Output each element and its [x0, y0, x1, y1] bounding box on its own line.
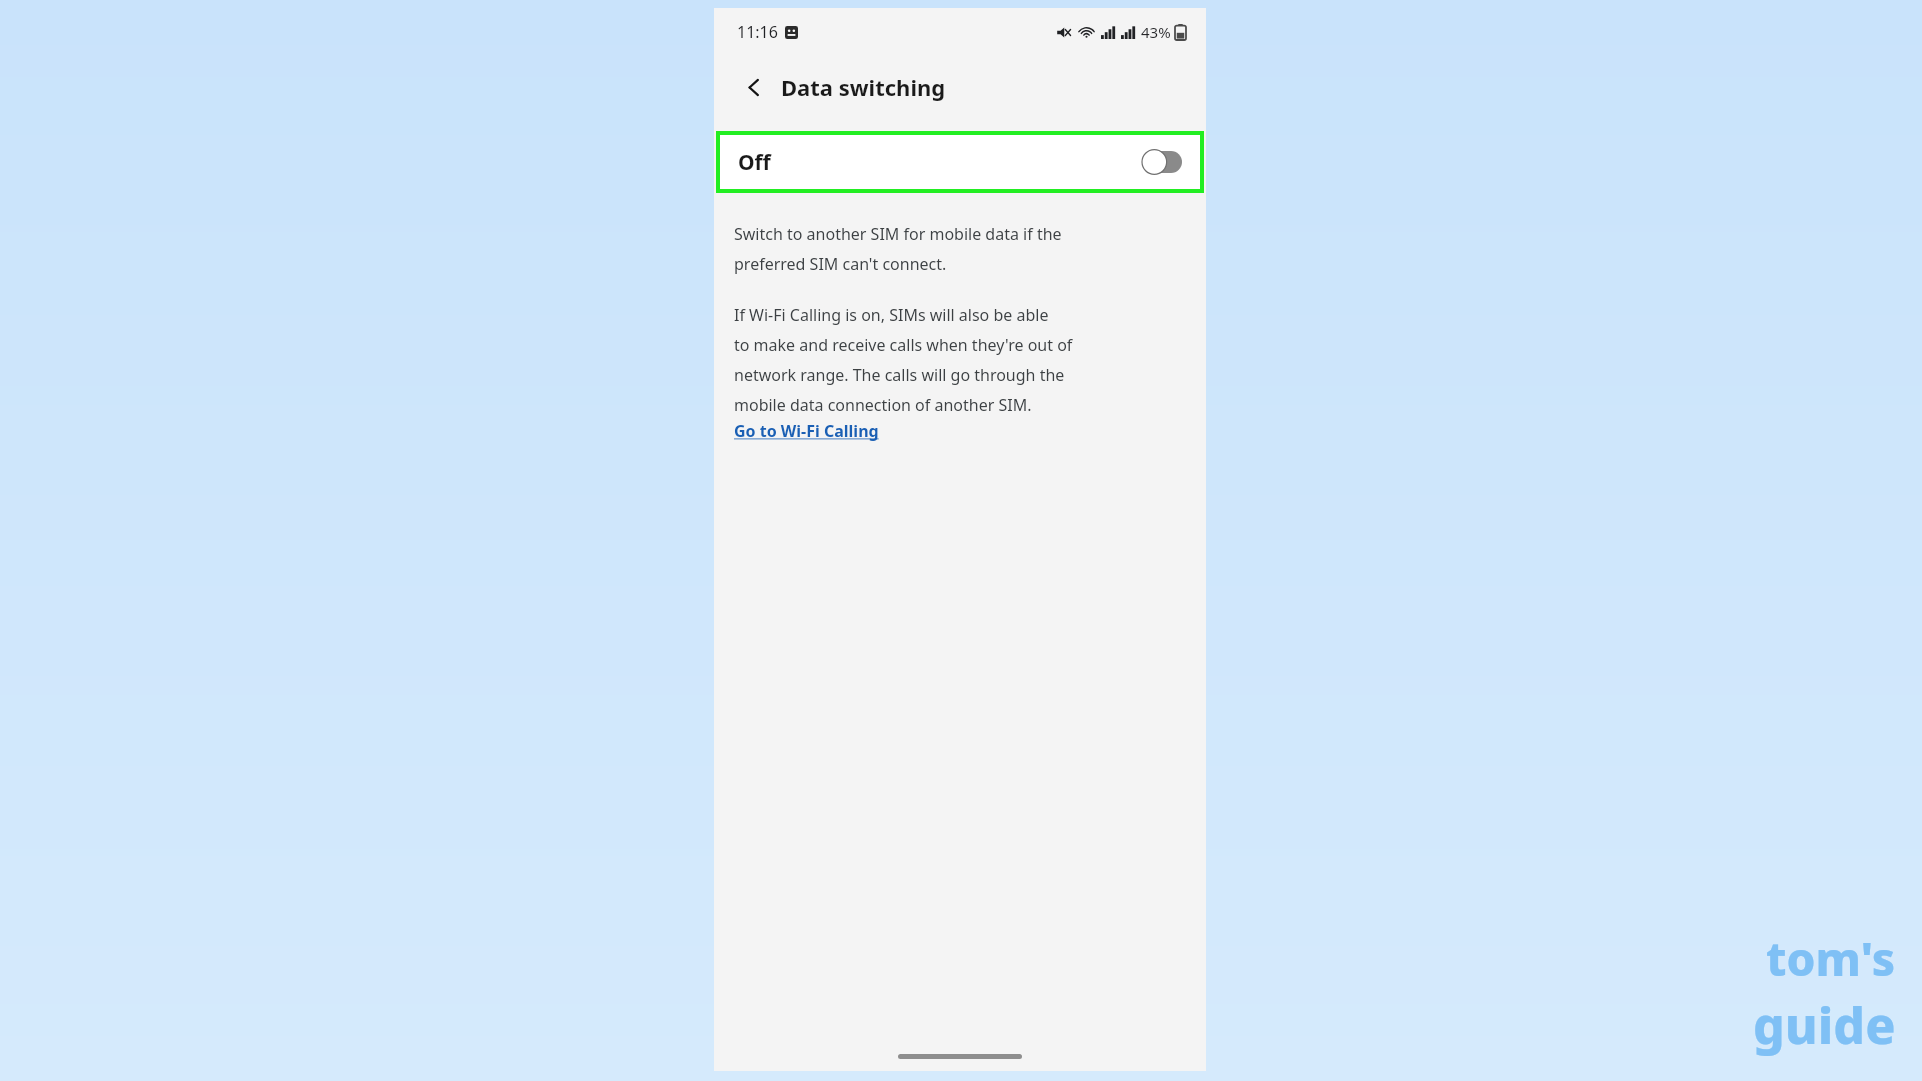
staticText: to make and receive calls when they're o…: [734, 334, 1073, 356]
button[interactable]: Go to Wi-Fi Calling: [734, 420, 879, 442]
staticText: 43%: [1141, 22, 1171, 42]
staticText: Off: [738, 148, 771, 177]
button[interactable]: Back: [734, 67, 774, 107]
staticText: Go to Wi-Fi Calling: [734, 420, 879, 442]
staticText: Switch to another SIM for mobile data if…: [734, 223, 1062, 245]
staticText: 11:16: [737, 21, 778, 43]
staticText: If Wi-Fi Calling is on, SIMs will also b…: [734, 304, 1049, 326]
staticText: preferred SIM can't connect.: [734, 253, 947, 275]
staticText: guide: [1753, 991, 1896, 1059]
staticText: Data switching: [781, 72, 946, 102]
staticText: mobile data connection of another SIM.: [734, 394, 1032, 416]
button[interactable]: Off: [720, 135, 1200, 189]
staticText: network range. The calls will go through…: [734, 364, 1065, 386]
staticText: tom's: [1766, 927, 1896, 990]
